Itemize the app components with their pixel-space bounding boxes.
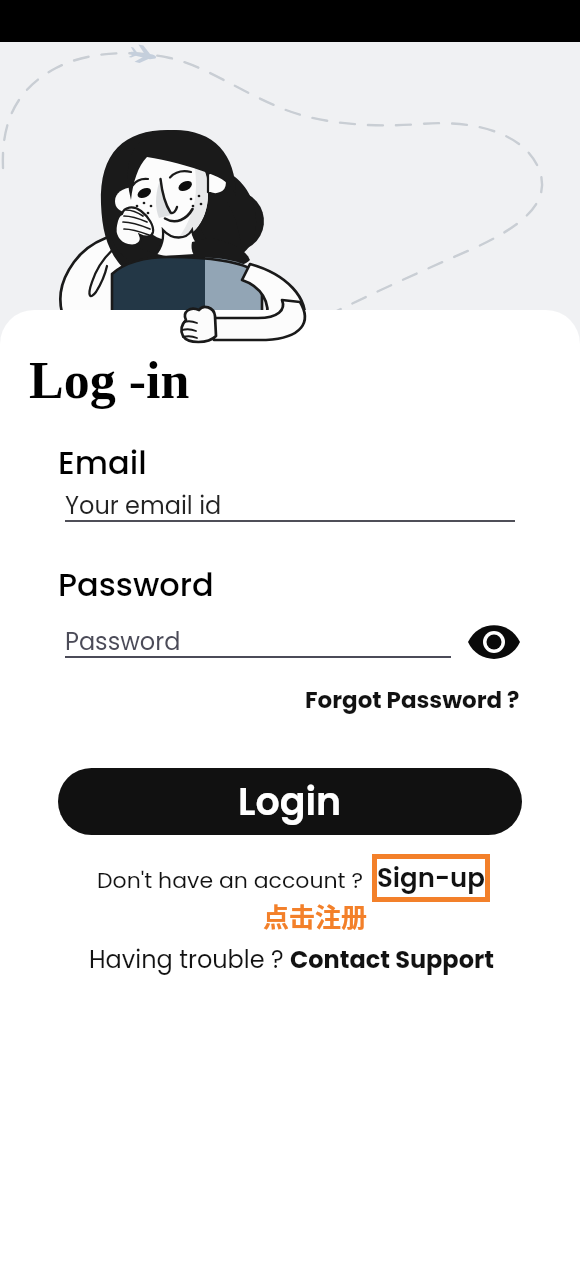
- staticText: Log -in: [29, 352, 190, 410]
- staticText: Email: [58, 440, 147, 485]
- staticText: Don't have an account ?: [97, 865, 363, 896]
- button[interactable]: Login: [58, 768, 522, 835]
- staticText: Your email id: [65, 489, 222, 523]
- button[interactable]: Forgot Password ?: [305, 684, 520, 716]
- staticText: Password: [58, 562, 214, 607]
- button[interactable]: Having trouble ? Contact Support: [89, 943, 494, 977]
- staticText: Login: [238, 775, 342, 828]
- button[interactable]: Show password: [462, 612, 526, 672]
- staticText: Password: [65, 625, 181, 659]
- button[interactable]: 点击注册: [263, 897, 368, 935]
- staticText: Sign-up: [377, 860, 485, 896]
- button[interactable]: Sign-up: [372, 854, 490, 902]
